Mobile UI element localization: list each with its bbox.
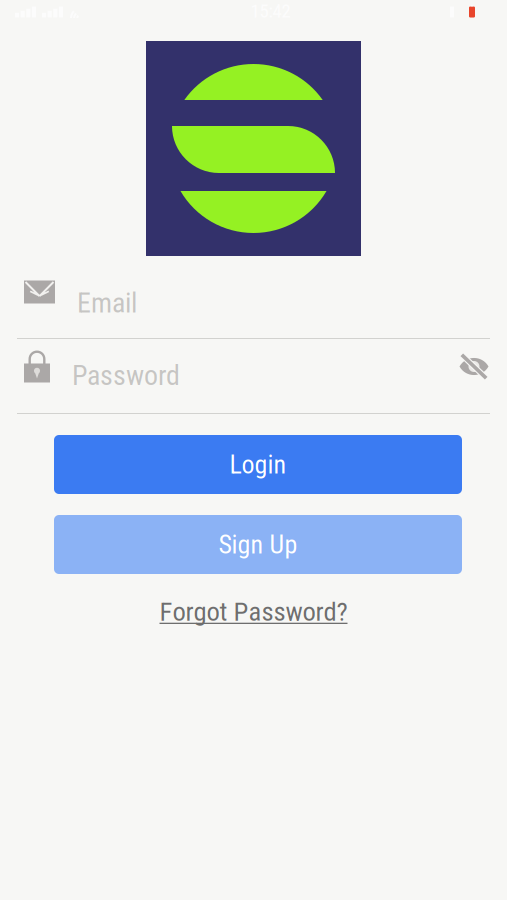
- staticText: Password: [72, 359, 180, 392]
- staticText: Login: [229, 449, 286, 480]
- button[interactable]: Show password: [459, 353, 489, 380]
- staticText: Forgot Password?: [159, 596, 347, 627]
- button[interactable]: Sign Up: [54, 515, 462, 574]
- button[interactable]: Login: [54, 435, 462, 494]
- button[interactable]: Forgot Password?: [159, 596, 347, 627]
- staticText: Email: [77, 287, 137, 319]
- staticText: Sign Up: [218, 529, 297, 560]
